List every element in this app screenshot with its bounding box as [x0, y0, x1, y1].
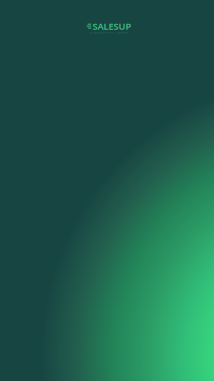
staticText: BUSINESS GROWTH PLATFORM: [90, 31, 128, 34]
staticText: SALESUP: [92, 20, 131, 32]
